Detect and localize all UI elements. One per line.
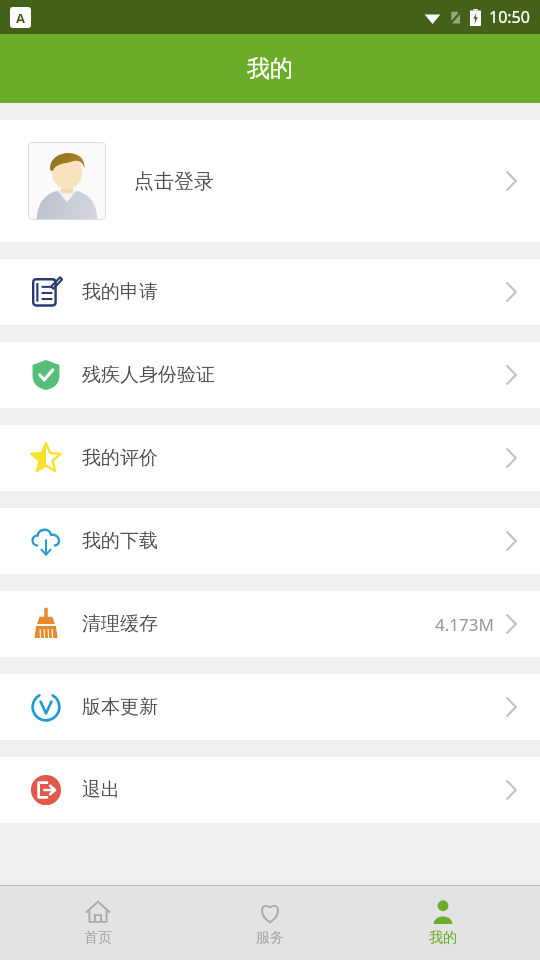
staticText: 版本更新 [82,695,158,719]
button[interactable]: 我的评价 [0,425,540,491]
staticText: A [16,9,25,27]
staticText: 服务 [256,929,284,947]
staticText: 我的 [247,54,293,83]
button[interactable]: 清理缓存 [0,591,540,657]
staticText: 10:50 [489,6,530,28]
staticText: 我的 [429,929,457,947]
staticText: 首页 [84,929,112,947]
button[interactable]: 我的下载 [0,508,540,574]
staticText: 退出 [82,778,120,802]
staticText: 点击登录 [134,169,214,194]
staticText: 残疾人身份验证 [82,363,215,387]
button[interactable]: 退出 [0,757,540,823]
button[interactable]: 首页 [23,893,173,953]
staticText: 我的评价 [82,446,158,470]
staticText: 我的申请 [82,280,158,304]
staticText: 我的下载 [82,529,158,553]
other: User avatar [28,142,106,220]
button[interactable]: 版本更新 [0,674,540,740]
staticText: 4.173M [435,613,494,636]
button[interactable]: 服务 [195,893,345,953]
button[interactable]: 残疾人身份验证 [0,342,540,408]
button[interactable]: 我的 [368,893,518,953]
staticText: 清理缓存 [82,612,158,636]
button[interactable]: User avatar [0,120,540,242]
button[interactable]: 我的申请 [0,259,540,325]
